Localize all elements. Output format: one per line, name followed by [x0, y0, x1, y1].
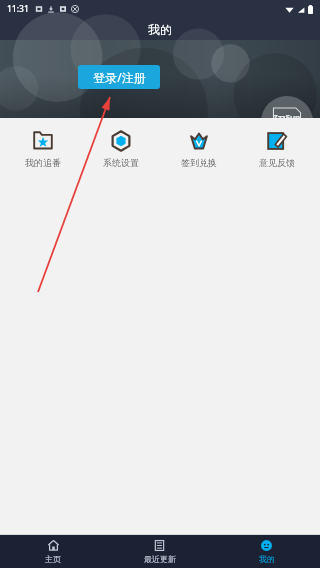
- button[interactable]: 我的追番: [8, 118, 78, 180]
- button[interactable]: 登录/注册: [78, 65, 160, 89]
- staticText: 11:31: [7, 3, 29, 15]
- button[interactable]: 我的: [213, 535, 320, 568]
- button[interactable]: 主页: [0, 535, 106, 568]
- button[interactable]: ZzzFun logo: [261, 96, 313, 148]
- button[interactable]: 意见反馈: [242, 118, 312, 180]
- staticText: 签到兑换: [181, 157, 217, 168]
- staticText: 我的: [148, 22, 172, 37]
- button[interactable]: 签到兑换: [164, 118, 234, 180]
- staticText: 登录/注册: [93, 69, 146, 85]
- button[interactable]: 系统设置: [86, 118, 156, 180]
- staticText: 最近更新: [144, 554, 176, 564]
- staticText: 我的追番: [25, 157, 61, 168]
- staticText: 我的: [259, 554, 275, 564]
- staticText: 主页: [45, 554, 61, 564]
- staticText: ZzzFun: [273, 112, 301, 123]
- staticText: 系统设置: [103, 157, 139, 168]
- button[interactable]: 最近更新: [106, 535, 213, 568]
- staticText: 意见反馈: [259, 157, 295, 168]
